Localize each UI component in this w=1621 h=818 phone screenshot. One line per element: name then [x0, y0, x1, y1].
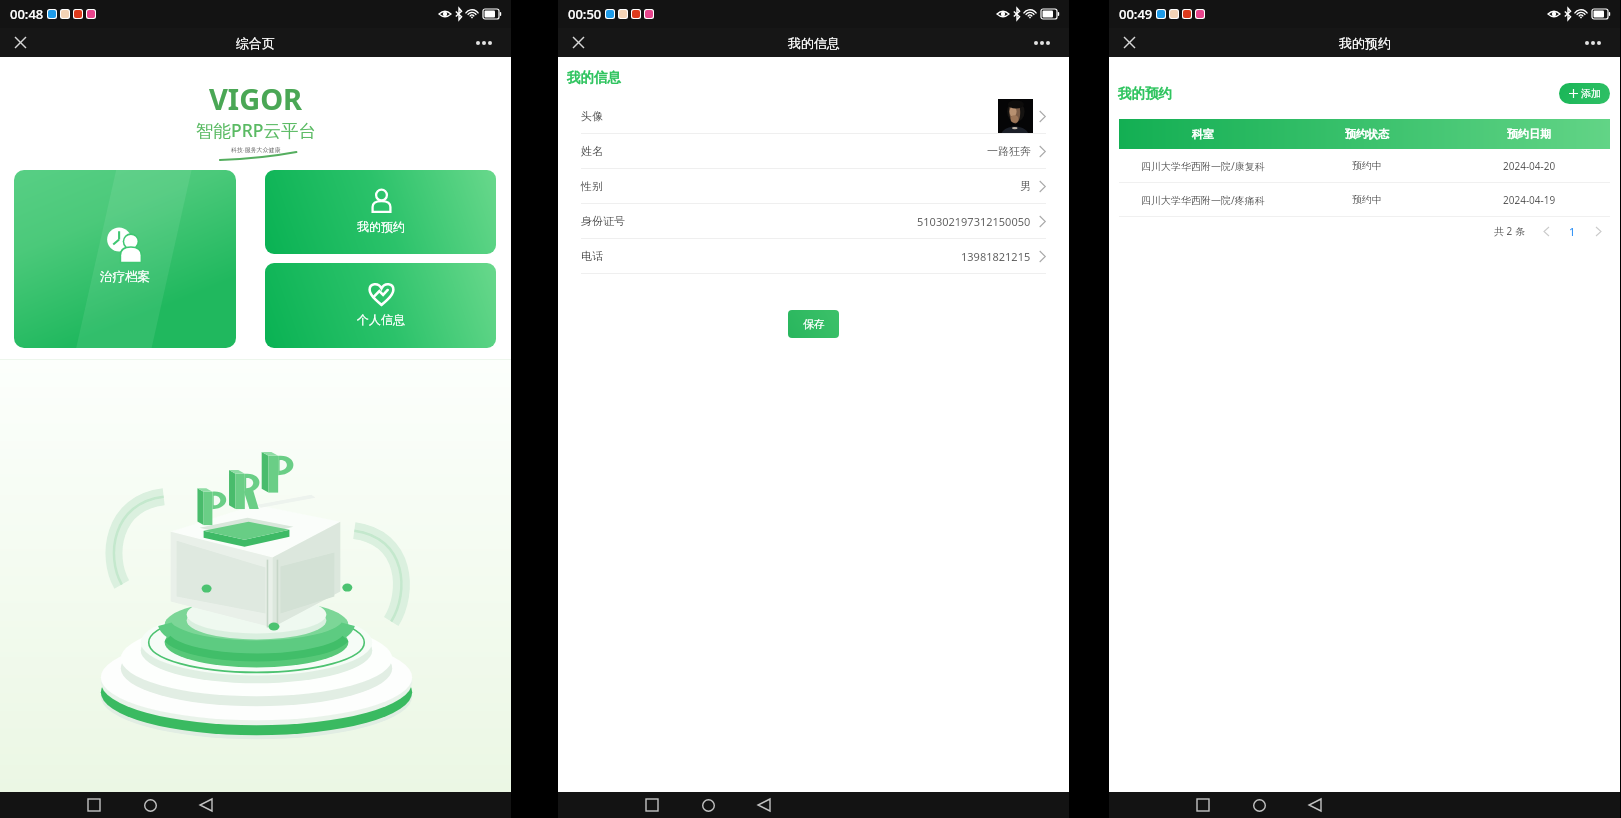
staticText: 智能PRP云平台 — [196, 118, 316, 142]
button[interactable]: Recents — [66, 792, 122, 818]
button[interactable]: Close — [558, 28, 598, 57]
staticText: 电话 — [581, 249, 603, 263]
button[interactable]: 姓名 — [581, 134, 1046, 168]
button[interactable]: More options — [467, 28, 511, 57]
button[interactable]: Back — [178, 792, 234, 818]
button[interactable]: 性别 — [581, 169, 1046, 203]
button[interactable]: 1 — [1564, 223, 1580, 239]
staticText: 科技·服务大众健康 — [231, 146, 281, 154]
staticText: 预约日期 — [1507, 127, 1551, 141]
button[interactable]: Back — [736, 792, 792, 818]
staticText: 1 — [1569, 224, 1576, 239]
staticText: 综合页 — [236, 35, 275, 51]
staticText: 预约状态 — [1345, 127, 1389, 141]
staticText: 我的信息 — [567, 69, 621, 86]
button[interactable]: Home — [1231, 792, 1287, 818]
staticText: VIGOR — [209, 79, 303, 118]
button[interactable]: Next page — [1590, 223, 1606, 239]
button[interactable]: Close — [0, 28, 40, 57]
staticText: 2024-04-20 — [1503, 159, 1556, 173]
staticText: 姓名 — [581, 144, 603, 158]
button[interactable]: More options — [1025, 28, 1069, 57]
staticText: 00:50 — [568, 5, 602, 23]
staticText: 510302197312150050 — [917, 214, 1031, 229]
button[interactable]: 添加 — [1559, 83, 1610, 104]
staticText: 四川大学华西附一院/康复科 — [1141, 159, 1265, 173]
staticText: 科室 — [1192, 127, 1214, 141]
staticText: 四川大学华西附一院/疼痛科 — [1141, 193, 1265, 207]
staticText: 一路狂奔 — [987, 144, 1031, 158]
staticText: 2024-04-19 — [1503, 193, 1556, 207]
button[interactable]: 电话 — [581, 239, 1046, 273]
button[interactable]: 保存 — [788, 310, 839, 338]
staticText: 添加 — [1581, 87, 1601, 100]
button[interactable]: 我的预约 — [265, 170, 496, 254]
staticText: 个人信息 — [357, 312, 405, 327]
button[interactable]: 治疗档案 — [14, 170, 236, 348]
button[interactable]: 四川大学华西附一院/康复科 — [1119, 149, 1610, 182]
staticText: 预约中 — [1352, 193, 1382, 206]
button[interactable]: Recents — [1175, 792, 1231, 818]
button[interactable]: 头像 — [581, 99, 1046, 133]
button[interactable]: Home — [122, 792, 178, 818]
button[interactable]: 个人信息 — [265, 263, 496, 348]
button[interactable]: 四川大学华西附一院/疼痛科 — [1119, 183, 1610, 216]
staticText: 身份证号 — [581, 214, 625, 228]
staticText: 00:49 — [1119, 5, 1153, 23]
button[interactable]: Recents — [624, 792, 680, 818]
staticText: 我的预约 — [1339, 35, 1391, 51]
staticText: 我的预约 — [1118, 85, 1172, 102]
button[interactable]: More options — [1576, 28, 1620, 57]
staticText: 我的信息 — [788, 35, 840, 51]
staticText: 共 2 条 — [1494, 224, 1525, 238]
staticText: 13981821215 — [961, 249, 1031, 264]
staticText: 治疗档案 — [100, 269, 150, 285]
staticText: 00:48 — [10, 5, 44, 23]
button[interactable]: Back — [1287, 792, 1343, 818]
button[interactable]: 身份证号 — [581, 204, 1046, 238]
staticText: 男 — [1020, 179, 1031, 193]
staticText: 我的预约 — [357, 219, 405, 234]
staticText: 性别 — [581, 179, 603, 193]
button[interactable]: Previous page — [1538, 223, 1554, 239]
staticText: 保存 — [803, 317, 825, 331]
button[interactable]: Home — [680, 792, 736, 818]
staticText: 预约中 — [1352, 159, 1382, 172]
button[interactable]: Close — [1109, 28, 1149, 57]
staticText: 头像 — [581, 109, 603, 123]
